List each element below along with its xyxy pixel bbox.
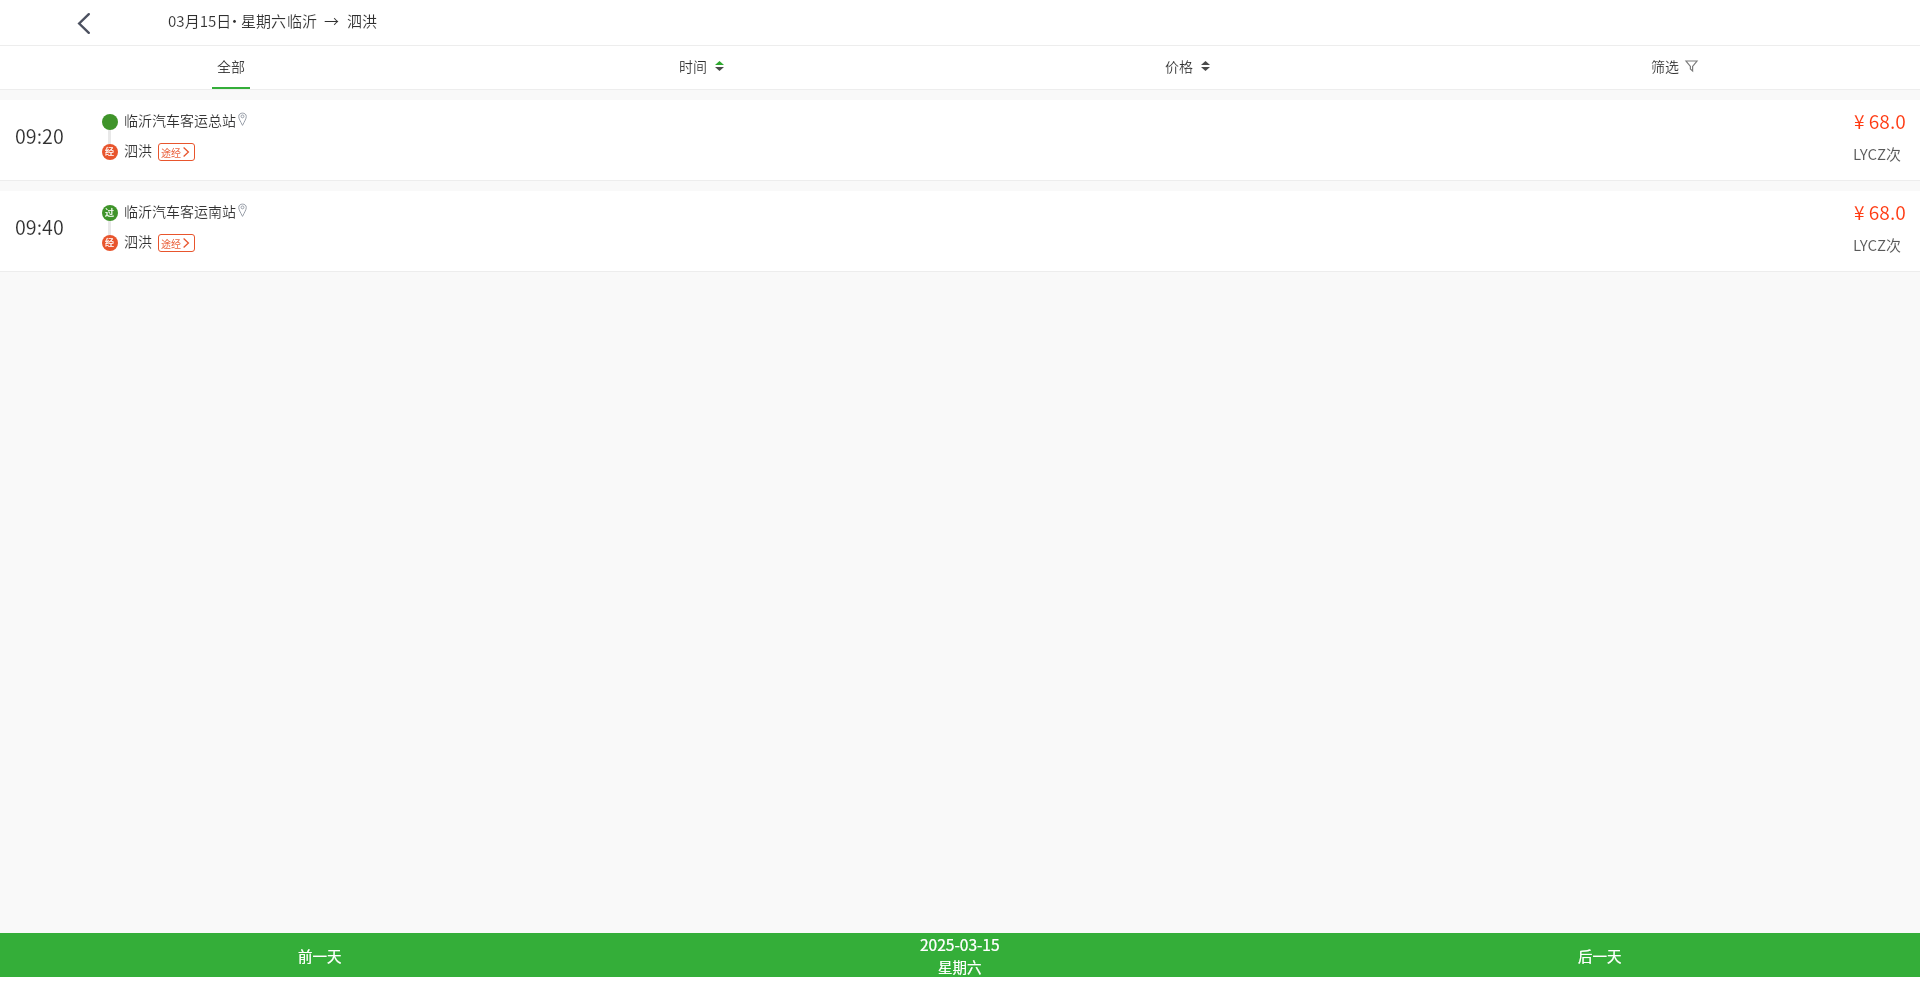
button[interactable]: 途经 xyxy=(161,234,191,252)
staticText: → xyxy=(324,10,340,32)
staticText: 前一天 xyxy=(298,945,342,966)
button[interactable]: 时间 xyxy=(679,50,724,81)
staticText: 后一天 xyxy=(1578,945,1622,966)
button[interactable]: 途经 xyxy=(161,143,191,161)
staticText: 筛选 xyxy=(1651,56,1679,76)
staticText: LYCZ次 xyxy=(1853,143,1902,165)
staticText: 途经 xyxy=(161,236,181,250)
button[interactable]: Back xyxy=(67,6,101,40)
button[interactable]: 09:20 xyxy=(0,100,1920,180)
button[interactable]: 全部 xyxy=(0,46,480,89)
staticText: 经 xyxy=(105,236,115,249)
staticText: 经 xyxy=(105,145,115,158)
button[interactable]: 前一天 xyxy=(0,933,640,977)
staticText: 泗洪 xyxy=(124,140,152,160)
staticText: 临沂 xyxy=(287,10,318,32)
staticText: 星期六 xyxy=(241,10,287,32)
staticText: 全部 xyxy=(217,56,245,76)
staticText: 泗洪 xyxy=(347,10,378,32)
staticText: 泗洪 xyxy=(124,231,152,251)
staticText: 星期六 xyxy=(938,956,982,977)
staticText: 价格 xyxy=(1165,56,1193,76)
staticText: 途经 xyxy=(161,145,181,159)
staticText: 09:20 xyxy=(15,121,64,149)
button[interactable]: 价格 xyxy=(1165,50,1210,81)
staticText: 09:40 xyxy=(15,212,64,240)
staticText: · xyxy=(227,10,243,32)
staticText: 2025-03-15 xyxy=(920,933,1000,955)
staticText: ¥ 68.0 xyxy=(1854,107,1906,135)
staticText: 临沂汽车客运总站 xyxy=(124,110,236,130)
staticText: 临沂汽车客运南站 xyxy=(124,201,236,221)
button[interactable]: 后一天 xyxy=(1280,933,1920,977)
staticText: 03月15日 xyxy=(168,10,232,32)
staticText: 过 xyxy=(105,206,115,219)
staticText: 时间 xyxy=(679,56,707,76)
button[interactable]: 09:40 xyxy=(0,191,1920,271)
button[interactable]: 筛选 xyxy=(1651,50,1697,81)
button[interactable]: 2025-03-15 xyxy=(640,933,1280,977)
staticText: ¥ 68.0 xyxy=(1854,198,1906,226)
staticText: LYCZ次 xyxy=(1853,234,1902,256)
